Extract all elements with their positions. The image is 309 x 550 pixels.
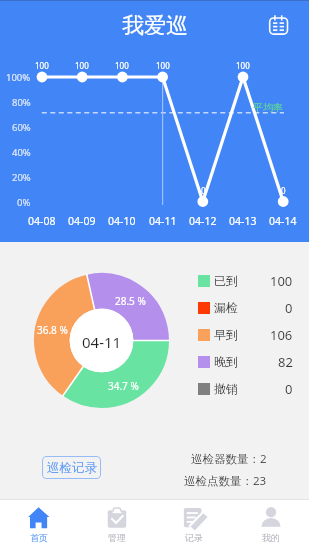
staticText: 我的 bbox=[262, 532, 280, 543]
staticText: 0 bbox=[281, 185, 286, 196]
staticText: 20% bbox=[12, 171, 31, 184]
staticText: 巡检器数量：2 bbox=[191, 451, 267, 467]
button[interactable]: 我的 bbox=[232, 500, 309, 550]
staticText: 记录 bbox=[185, 532, 203, 543]
staticText: 巡检点数量：23 bbox=[184, 473, 267, 489]
staticText: 巡检记录 bbox=[47, 460, 97, 476]
staticText: 晚到 bbox=[214, 354, 238, 369]
staticText: 0 bbox=[285, 299, 293, 317]
button[interactable]: 巡检记录 bbox=[42, 456, 101, 479]
button[interactable]: 记录 bbox=[155, 500, 232, 550]
staticText: 管理 bbox=[108, 532, 126, 543]
staticText: 100 bbox=[236, 60, 250, 71]
button[interactable]: Calendar bbox=[262, 9, 294, 41]
staticText: 100 bbox=[270, 272, 293, 290]
staticText: 04-09 bbox=[68, 214, 96, 228]
staticText: 34.7 % bbox=[108, 379, 139, 393]
staticText: 100 bbox=[75, 60, 89, 71]
staticText: 我爱巡 bbox=[122, 12, 188, 40]
staticText: 平均率 bbox=[253, 101, 283, 114]
staticText: 0 bbox=[285, 380, 293, 398]
staticText: 04-13 bbox=[229, 214, 257, 228]
staticText: 已到 bbox=[214, 273, 238, 288]
staticText: 100 bbox=[35, 60, 49, 71]
button[interactable]: 撤销 bbox=[198, 375, 293, 402]
button[interactable]: 首页 bbox=[0, 500, 78, 550]
staticText: 100% bbox=[6, 71, 31, 84]
staticText: 0 bbox=[201, 185, 206, 196]
staticText: 36.8 % bbox=[37, 323, 68, 337]
staticText: 首页 bbox=[30, 532, 48, 543]
button[interactable]: 漏检 bbox=[198, 294, 293, 321]
staticText: 0% bbox=[17, 196, 31, 209]
staticText: 80% bbox=[12, 96, 31, 109]
staticText: 04-08 bbox=[28, 214, 56, 228]
staticText: 04-11 bbox=[149, 214, 177, 228]
staticText: 04-10 bbox=[108, 214, 136, 228]
button[interactable]: 晚到 bbox=[198, 348, 293, 375]
button[interactable]: 早到 bbox=[198, 321, 293, 348]
staticText: 撤销 bbox=[214, 381, 238, 396]
staticText: 28.5 % bbox=[115, 294, 146, 308]
staticText: 04-12 bbox=[189, 214, 217, 228]
staticText: 04-11 bbox=[82, 332, 122, 352]
staticText: 早到 bbox=[214, 327, 238, 342]
staticText: 106 bbox=[270, 326, 293, 344]
button[interactable]: 已到 bbox=[198, 267, 293, 294]
staticText: 100 bbox=[156, 60, 170, 71]
staticText: 40% bbox=[12, 146, 31, 159]
staticText: 82 bbox=[278, 353, 293, 371]
staticText: 60% bbox=[12, 121, 31, 134]
button[interactable]: 管理 bbox=[78, 500, 155, 550]
staticText: 漏检 bbox=[214, 300, 238, 315]
staticText: 100 bbox=[115, 60, 129, 71]
staticText: 04-14 bbox=[269, 214, 297, 228]
